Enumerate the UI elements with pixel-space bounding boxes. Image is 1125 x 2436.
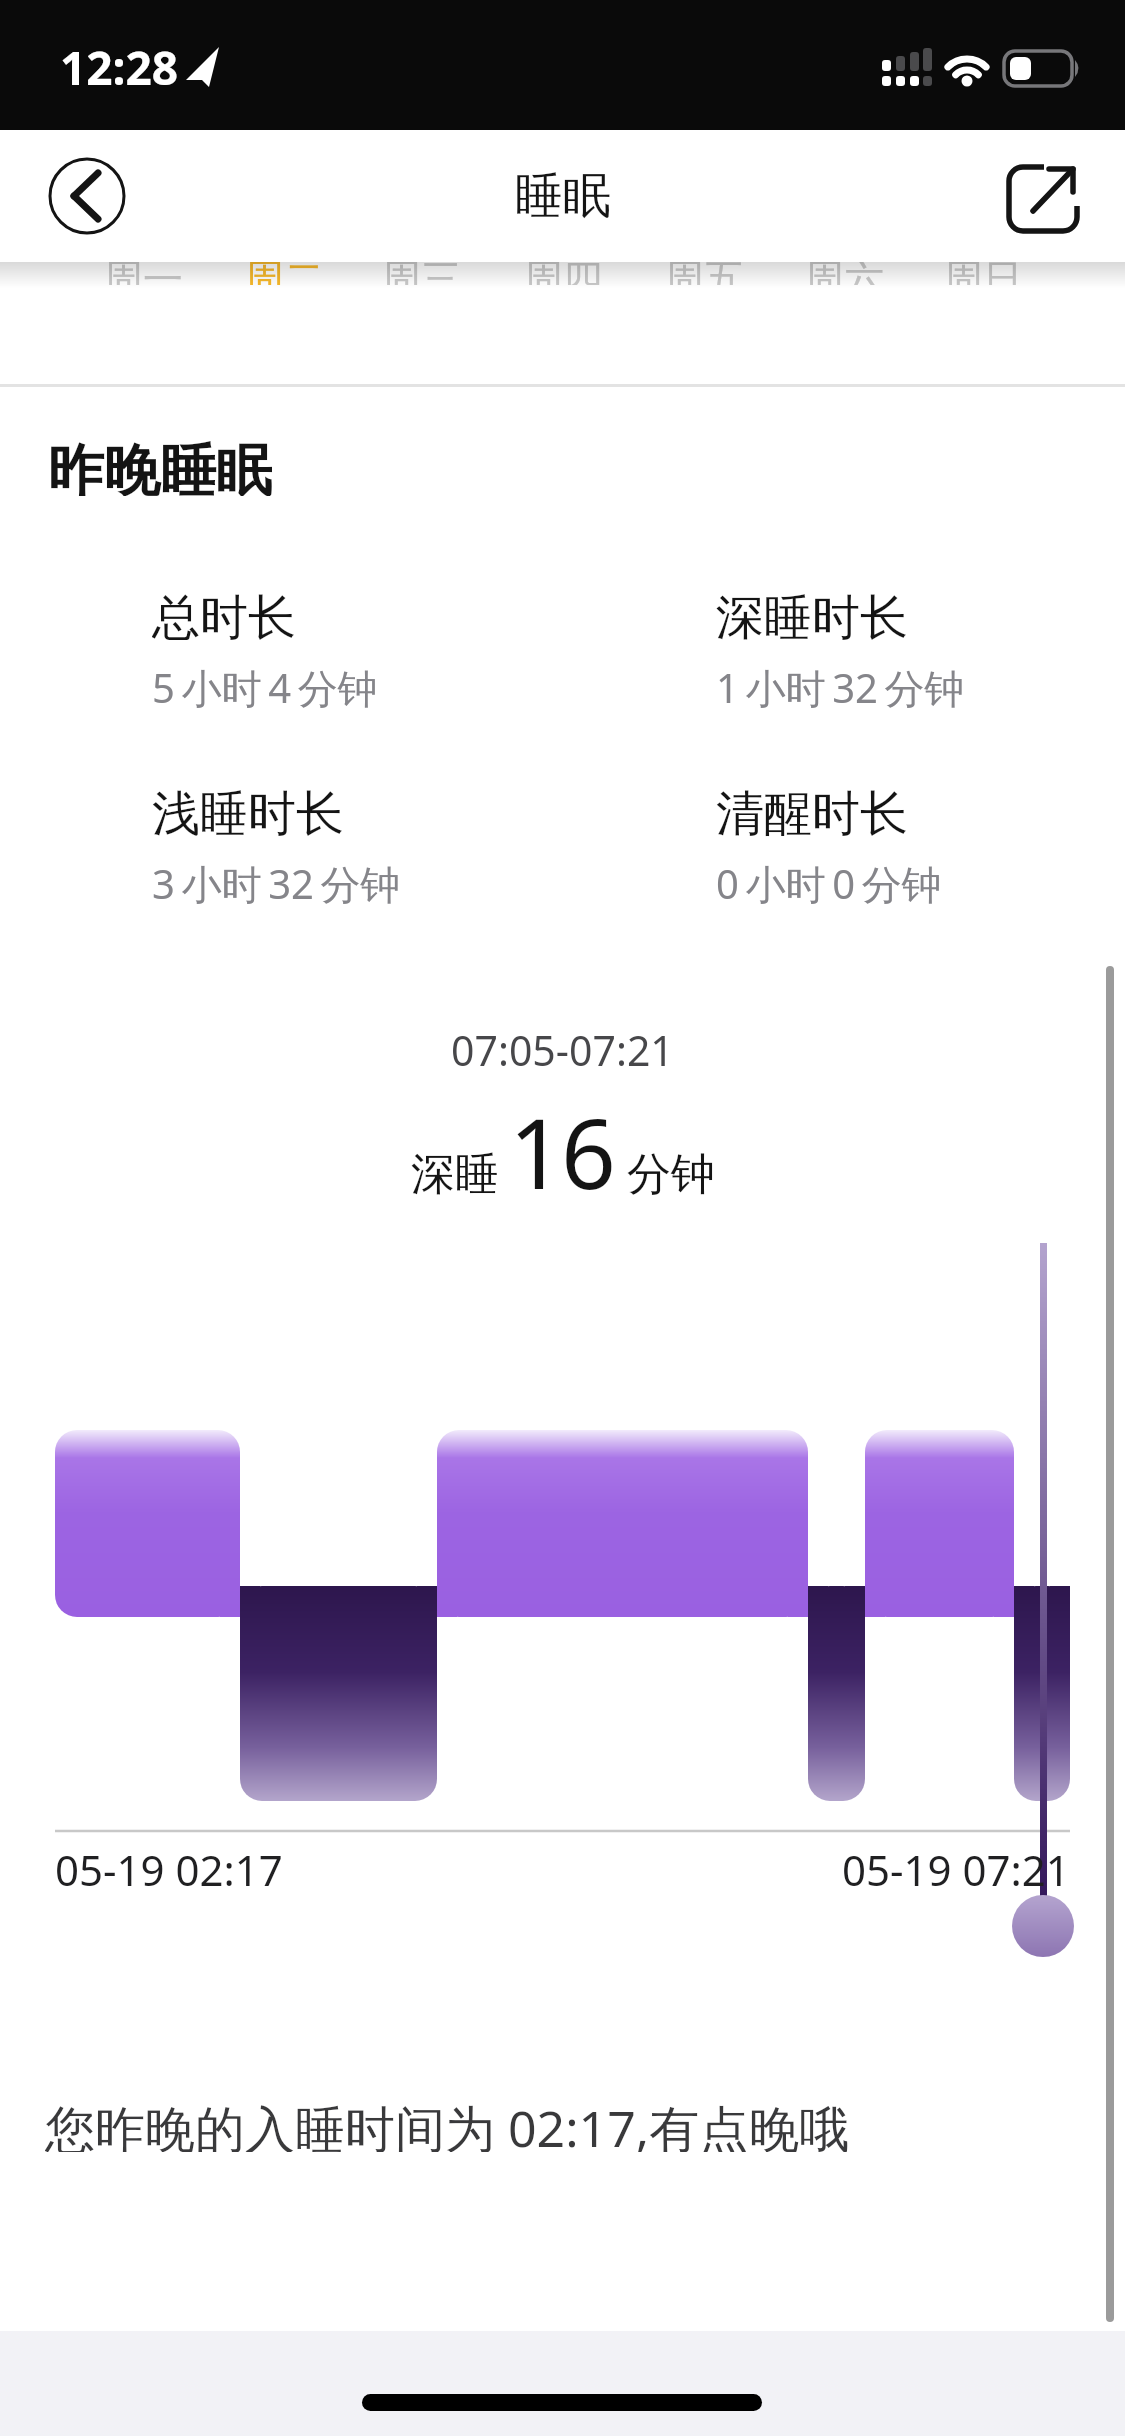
button[interactable]: 周二 xyxy=(224,262,344,285)
staticText: 16 xyxy=(509,1086,613,1216)
staticText: 睡眠 xyxy=(515,166,611,226)
staticText: 您昨晚的入睡时间为 02:17,有点晚哦 xyxy=(45,2094,850,2152)
button[interactable]: 周一 xyxy=(83,262,203,285)
staticText: 昨晚睡眠 xyxy=(48,436,272,496)
staticText: 07:05-07:21 xyxy=(451,1022,674,1074)
staticText: 1 小时 32 分钟 xyxy=(716,660,965,712)
button[interactable] xyxy=(1002,158,1086,238)
staticText: 浅睡时长 xyxy=(152,784,344,840)
staticText: 分钟 xyxy=(627,1147,715,1202)
staticText: 05-19 02:17 xyxy=(55,1841,283,1893)
staticText: 周六 xyxy=(804,262,884,285)
button[interactable]: 周六 xyxy=(784,262,904,285)
staticText: 周三 xyxy=(381,262,461,285)
staticText: 3 小时 32 分钟 xyxy=(152,856,401,908)
button[interactable] xyxy=(48,157,126,235)
staticText: 05-19 07:21 xyxy=(842,1841,1070,1893)
button[interactable]: 周五 xyxy=(644,262,764,285)
staticText: 深睡时长 xyxy=(716,588,908,644)
staticText: 周二 xyxy=(244,262,324,285)
staticText: 总时长 xyxy=(152,588,296,644)
staticText: 清醒时长 xyxy=(716,784,908,840)
staticText: 周日 xyxy=(943,262,1023,285)
staticText: 周四 xyxy=(523,262,603,285)
button[interactable]: 周三 xyxy=(361,262,481,285)
button[interactable]: 周日 xyxy=(923,262,1043,285)
staticText: 12:28 xyxy=(60,36,179,96)
button[interactable]: 周四 xyxy=(503,262,623,285)
staticText: 深睡 xyxy=(411,1147,499,1202)
staticText: 周五 xyxy=(664,262,744,285)
staticText: 5 小时 4 分钟 xyxy=(152,660,378,712)
staticText: 周一 xyxy=(103,262,183,285)
staticText: 0 小时 0 分钟 xyxy=(716,856,942,908)
